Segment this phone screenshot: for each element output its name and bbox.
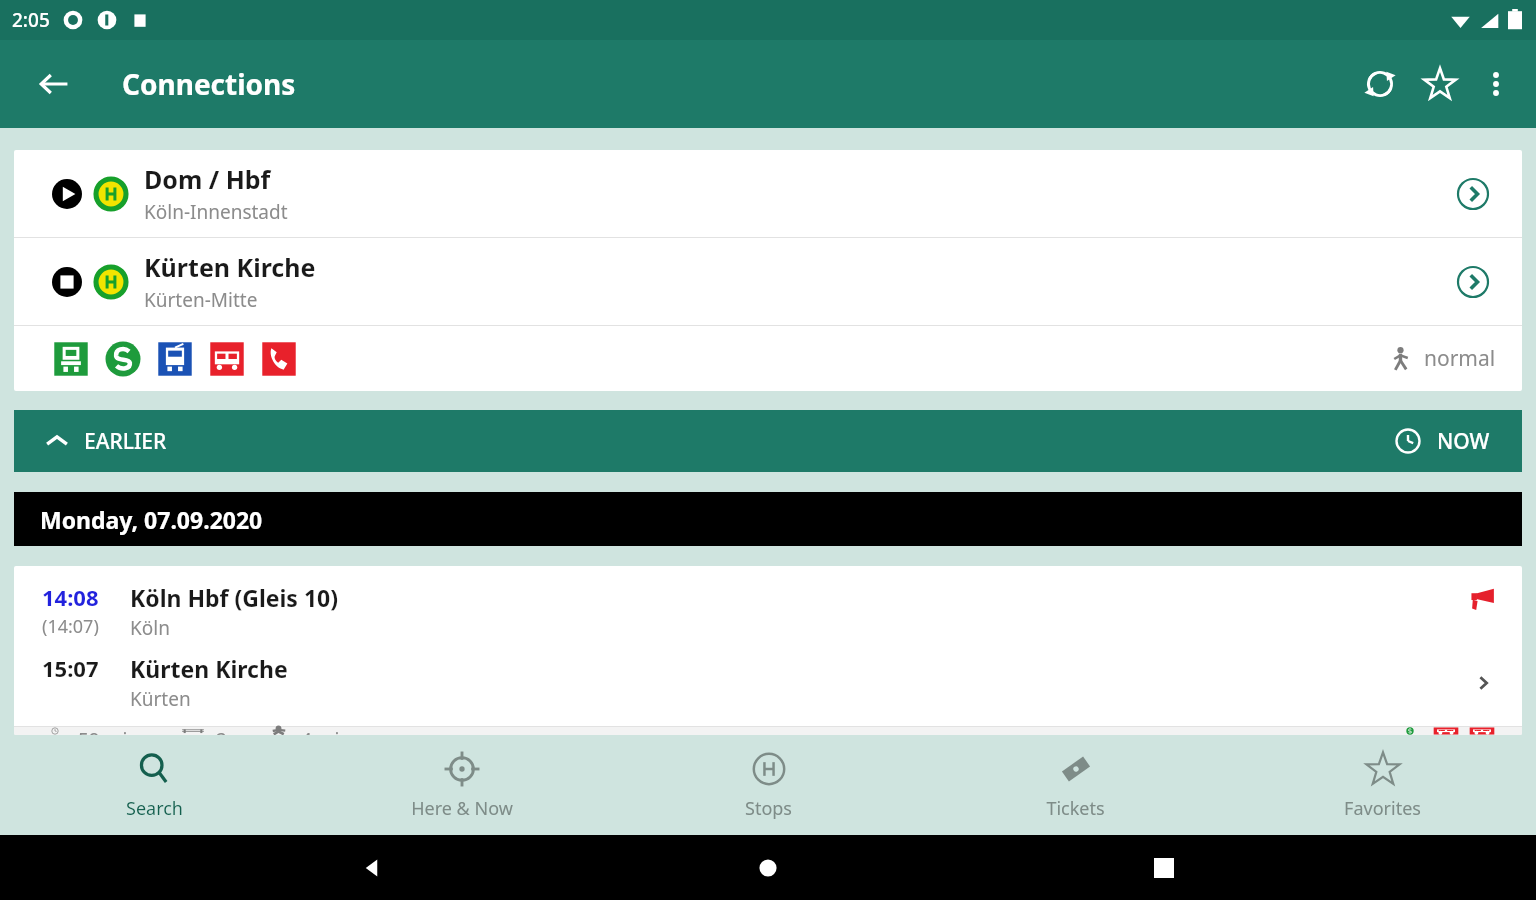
staticText: 14:08 <box>42 582 99 612</box>
staticText: Köln-Innenstadt <box>144 199 288 225</box>
button[interactable]: 14:08 <box>14 566 1522 735</box>
button[interactable]: Stops <box>615 735 922 835</box>
staticText: 4 min <box>301 727 352 735</box>
staticText: 2 <box>216 727 227 735</box>
button[interactable]: Open stop details <box>1450 171 1496 217</box>
staticText: 15:07 <box>42 653 99 683</box>
button[interactable]: Back <box>26 56 82 112</box>
staticText: Köln <box>130 615 170 641</box>
staticText: EARLIER <box>84 427 167 456</box>
staticText: 59 min <box>78 727 140 735</box>
button[interactable]: Open stop details <box>1450 259 1496 305</box>
staticText: NOW <box>1437 427 1490 456</box>
button[interactable]: Tickets <box>922 735 1229 835</box>
button[interactable]: EARLIER <box>14 410 191 472</box>
button[interactable]: NOW <box>1375 410 1522 472</box>
button[interactable]: Refresh <box>1350 54 1410 114</box>
button[interactable]: Favorite <box>1410 54 1470 114</box>
staticText: Kürten Kirche <box>130 653 288 684</box>
button[interactable]: Here & Now <box>308 735 615 835</box>
button[interactable]: More options <box>1470 58 1522 110</box>
staticText: (14:07) <box>42 614 99 639</box>
button[interactable]: Recents <box>1140 844 1188 892</box>
staticText: Kürten <box>130 686 191 712</box>
button[interactable]: Favorites <box>1229 735 1536 835</box>
button[interactable]: Dom / Hbf <box>14 150 1522 237</box>
staticText: Köln Hbf (Gleis 10) <box>130 582 338 613</box>
button[interactable]: Kürten Kirche <box>14 238 1522 325</box>
button[interactable]: normal <box>14 326 1522 391</box>
staticText: 2:05 <box>12 7 50 33</box>
button[interactable]: Home <box>744 844 792 892</box>
staticText: Stops <box>745 796 792 821</box>
staticText: Monday, 07.09.2020 <box>40 504 263 535</box>
staticText: Connections <box>122 65 296 103</box>
staticText: Here & Now <box>411 796 513 821</box>
staticText: Favorites <box>1344 796 1421 821</box>
button[interactable]: Search <box>0 735 308 835</box>
staticText: normal <box>1424 344 1496 373</box>
button[interactable]: Back <box>348 844 396 892</box>
staticText: Kürten Kirche <box>144 250 316 284</box>
staticText: Tickets <box>1046 796 1105 821</box>
staticText: Dom / Hbf <box>144 162 271 196</box>
staticText: Search <box>126 796 183 821</box>
staticText: Kürten-Mitte <box>144 287 258 313</box>
